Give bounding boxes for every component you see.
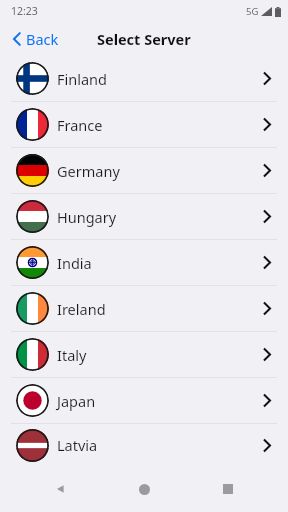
staticText: 12:23	[11, 4, 38, 18]
staticText: France	[57, 115, 103, 135]
staticText: Germany	[57, 161, 120, 181]
button[interactable]: Home	[121, 466, 167, 512]
button[interactable]: Back	[38, 466, 84, 512]
button[interactable]: France	[0, 102, 288, 147]
staticText: Latvia	[57, 435, 98, 455]
button[interactable]: Finland	[0, 56, 288, 101]
button[interactable]: Germany	[0, 148, 288, 193]
button[interactable]: Recent apps	[205, 466, 251, 512]
button[interactable]: India	[0, 240, 288, 285]
staticText: Hungary	[57, 207, 117, 227]
staticText: Japan	[57, 391, 96, 411]
button[interactable]: Ireland	[0, 286, 288, 331]
button[interactable]: Latvia	[0, 424, 288, 466]
staticText: India	[57, 253, 92, 273]
staticText: Back	[26, 29, 59, 49]
button[interactable]: Italy	[0, 332, 288, 377]
staticText: Select Server	[97, 29, 191, 49]
staticText: 5G	[246, 5, 259, 18]
staticText: Finland	[57, 69, 107, 89]
button[interactable]: Japan	[0, 378, 288, 423]
staticText: Ireland	[57, 299, 106, 319]
button[interactable]: Back	[0, 24, 69, 54]
button[interactable]: Hungary	[0, 194, 288, 239]
staticText: Italy	[57, 345, 87, 365]
